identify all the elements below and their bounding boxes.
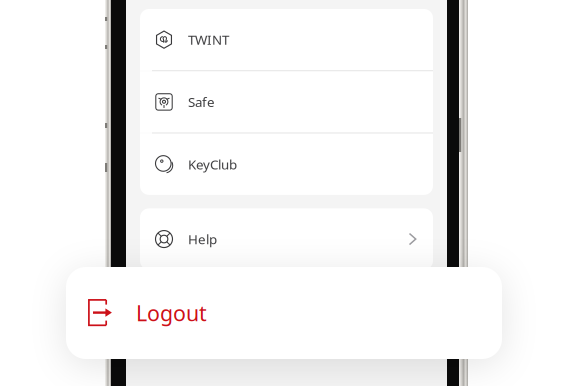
staticText: TWINT bbox=[188, 31, 229, 48]
staticText: KeyClub bbox=[188, 155, 237, 173]
staticText: Logout bbox=[136, 299, 207, 327]
staticText: Help bbox=[188, 230, 217, 248]
button[interactable]: Logout bbox=[66, 267, 502, 359]
button[interactable]: Safe bbox=[140, 71, 433, 133]
button[interactable]: TWINT bbox=[140, 9, 433, 70]
staticText: Safe bbox=[188, 93, 215, 111]
button[interactable]: KeyClub bbox=[140, 134, 433, 195]
button[interactable]: Help bbox=[140, 208, 433, 270]
